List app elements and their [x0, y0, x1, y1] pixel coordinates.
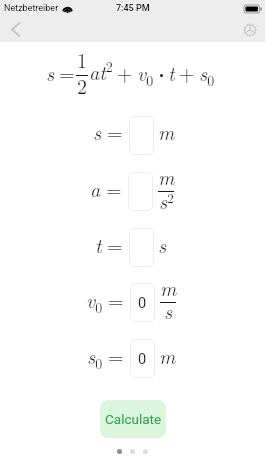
- staticText: m: [160, 273, 177, 301]
- staticText: s0: [87, 341, 103, 373]
- staticText: 1: [77, 45, 87, 73]
- staticText: v0: [137, 58, 154, 90]
- staticText: t: [168, 58, 175, 86]
- button[interactable]: [128, 172, 153, 211]
- staticText: =: [107, 117, 123, 145]
- staticText: t: [95, 230, 102, 258]
- staticText: Netzbetreiber: [4, 3, 59, 14]
- staticText: m: [158, 117, 175, 145]
- staticText: at2: [89, 56, 113, 86]
- staticText: =: [107, 230, 123, 258]
- staticText: s0: [199, 58, 215, 90]
- staticText: Calculate: [105, 411, 162, 427]
- staticText: s: [93, 117, 102, 145]
- button[interactable]: 0: [130, 283, 155, 322]
- staticText: a: [90, 174, 101, 202]
- staticText: s2: [159, 186, 174, 214]
- staticText: 0: [138, 294, 147, 311]
- staticText: s: [158, 230, 167, 258]
- staticText: +: [179, 58, 195, 86]
- staticText: s: [164, 296, 173, 324]
- staticText: =: [108, 285, 124, 313]
- staticText: +: [117, 58, 133, 86]
- button[interactable]: Settings: [235, 17, 265, 42]
- staticText: v0: [86, 285, 103, 317]
- button[interactable]: 0: [130, 339, 155, 378]
- staticText: 2: [77, 71, 87, 99]
- staticText: =: [59, 58, 75, 86]
- staticText: m: [158, 162, 175, 190]
- staticText: 0: [138, 350, 147, 367]
- staticText: s: [46, 58, 55, 86]
- staticText: =: [106, 174, 122, 202]
- staticText: m: [159, 341, 176, 369]
- button[interactable]: Calculate: [100, 400, 166, 438]
- staticText: =: [108, 341, 124, 369]
- button[interactable]: Back: [0, 17, 30, 42]
- button[interactable]: [129, 228, 154, 267]
- staticText: 7:45 PM: [116, 3, 150, 14]
- button[interactable]: [129, 116, 154, 155]
